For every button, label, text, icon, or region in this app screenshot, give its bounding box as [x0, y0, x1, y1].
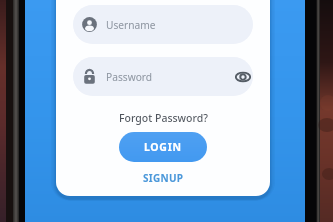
- button[interactable]: Username: [73, 5, 253, 44]
- staticText: Username: [106, 18, 156, 32]
- button[interactable]: LOGIN: [119, 132, 207, 162]
- button[interactable]: Password: [73, 57, 253, 96]
- staticText: LOGIN: [144, 140, 182, 154]
- staticText: Password: [106, 70, 153, 84]
- button[interactable]: Forgot Password?: [119, 111, 208, 125]
- button[interactable]: SIGNUP: [143, 171, 184, 185]
